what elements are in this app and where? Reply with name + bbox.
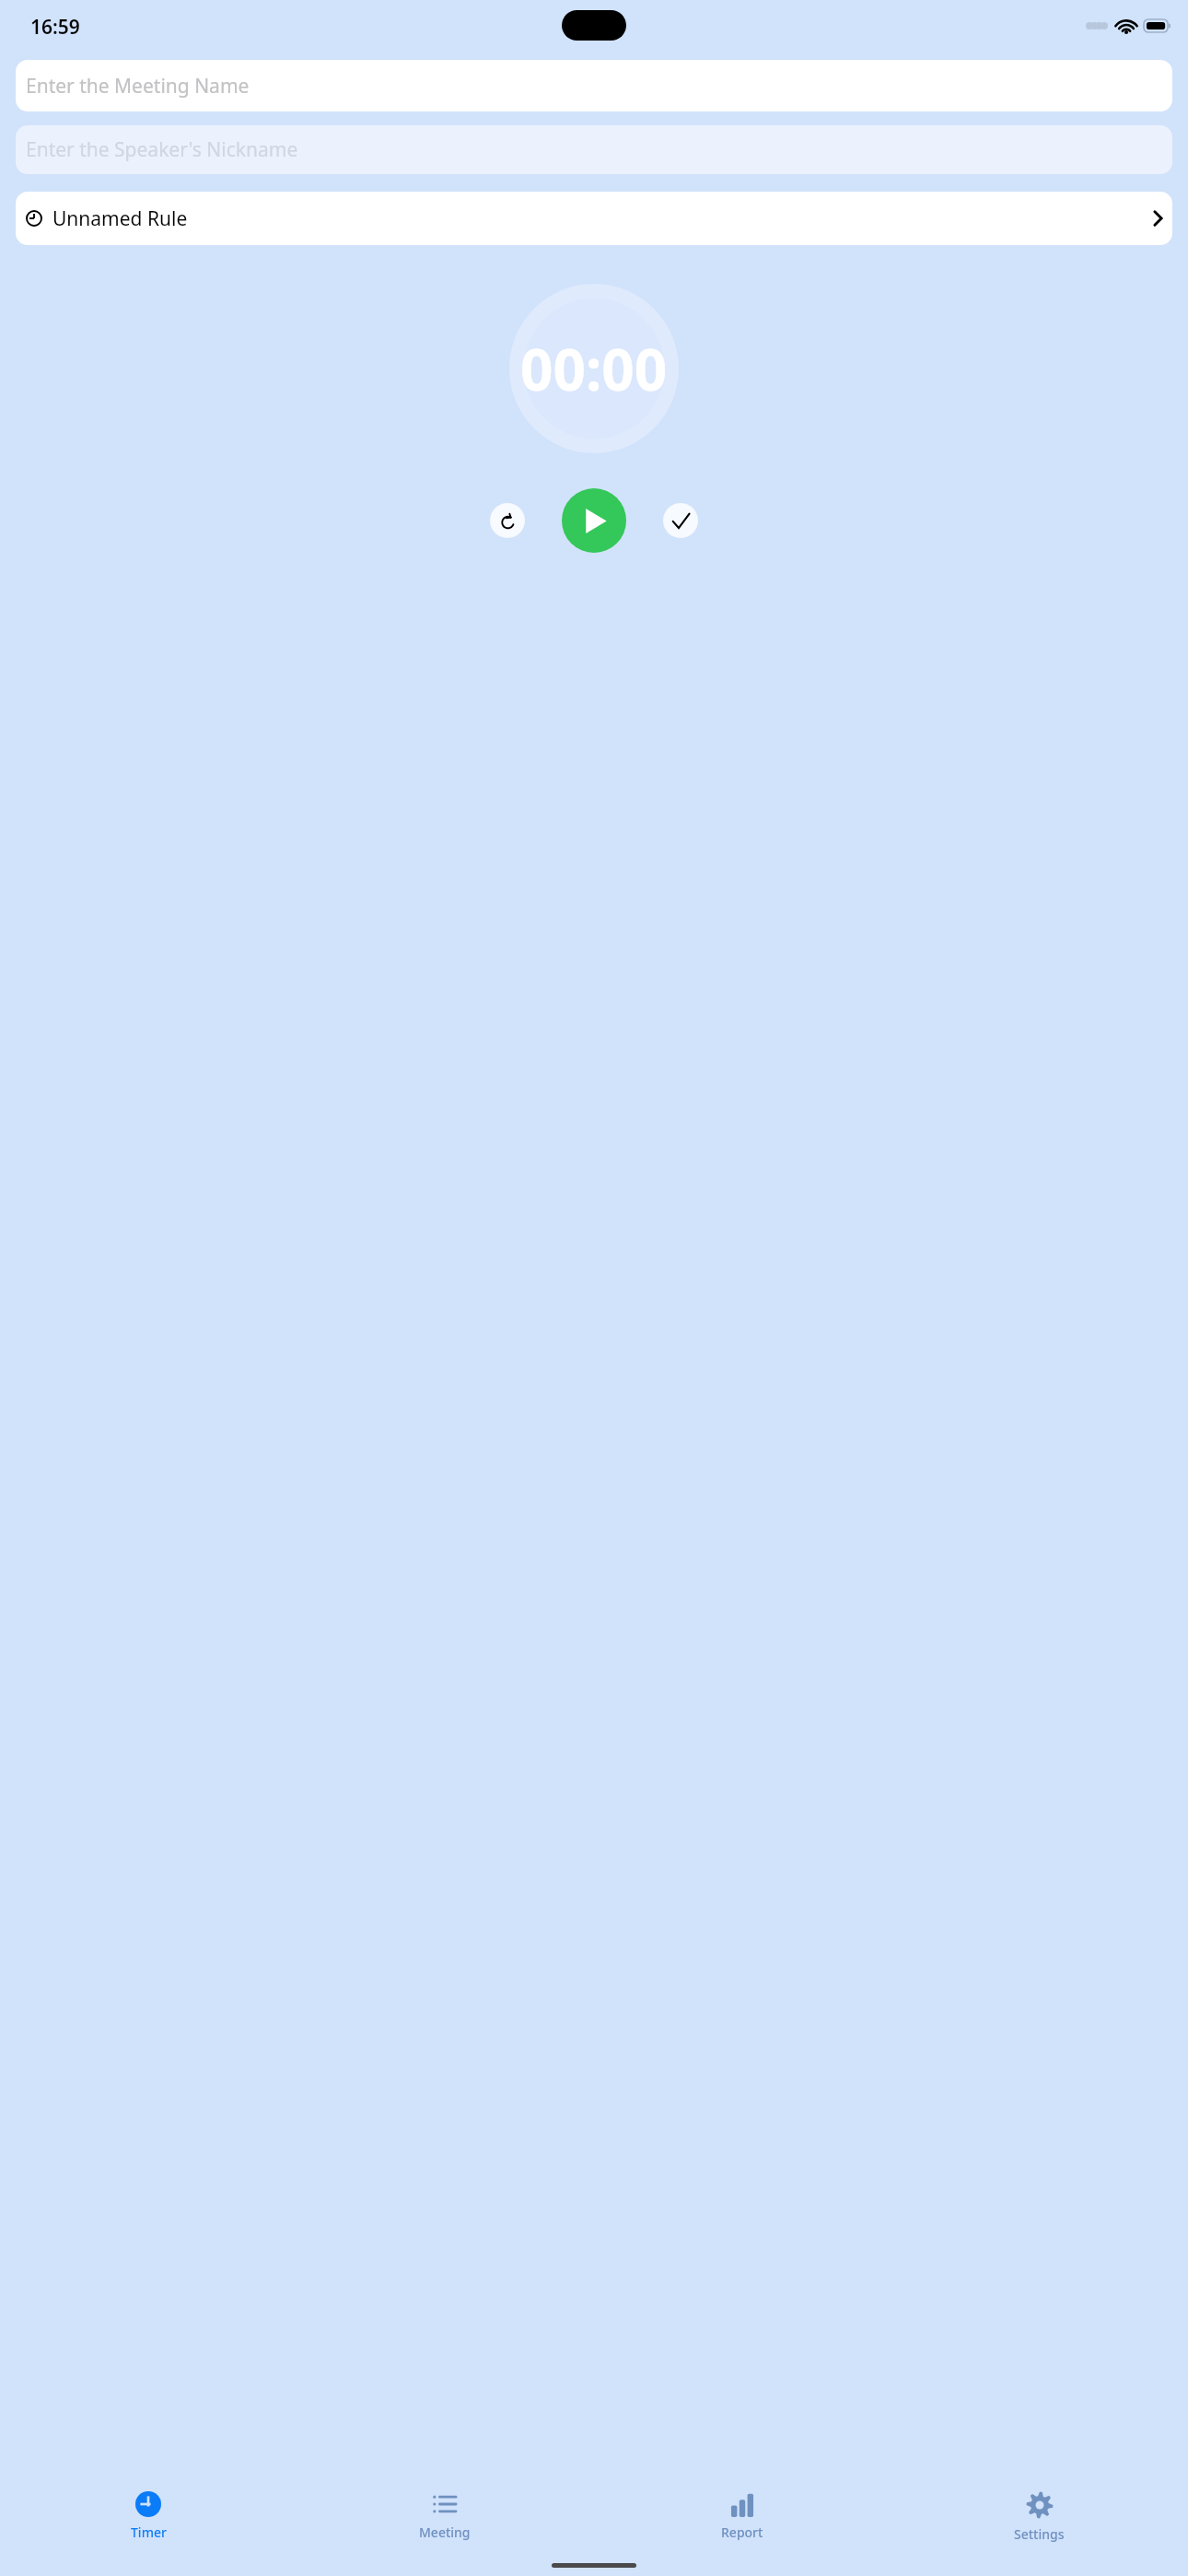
button[interactable]: Start (562, 488, 626, 553)
staticText: Settings (1014, 2525, 1065, 2543)
staticText: Timer (131, 2523, 167, 2541)
staticText: Report (721, 2523, 763, 2541)
button[interactable]: Enter the Meeting Name (16, 60, 1172, 111)
button[interactable]: Reset (490, 503, 525, 538)
button[interactable]: Meeting (297, 2484, 593, 2541)
button[interactable]: Unnamed Rule (16, 192, 1172, 245)
button[interactable]: Report (593, 2484, 891, 2541)
button[interactable]: Timer (0, 2484, 297, 2541)
button[interactable]: Finish (663, 503, 698, 538)
button[interactable]: Enter the Speaker's Nickname (16, 125, 1172, 174)
staticText: Enter the Meeting Name (26, 73, 250, 100)
button[interactable]: Settings (891, 2484, 1188, 2543)
staticText: 00:00 (520, 330, 668, 407)
staticText: Enter the Speaker's Nickname (26, 136, 298, 163)
staticText: Unnamed Rule (52, 205, 188, 232)
staticText: Meeting (419, 2523, 471, 2541)
staticText: 16:59 (30, 14, 80, 41)
